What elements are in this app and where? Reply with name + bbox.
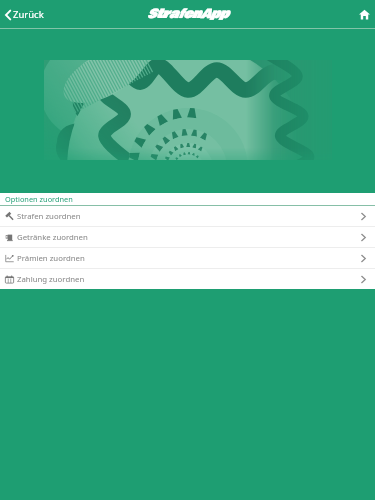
staticText: StrafenApp [147,5,229,24]
staticText: Prämien zuordnen [17,253,85,264]
staticText: Zahlung zuordnen [17,274,85,285]
button[interactable]: Zahlung zuordnen [0,269,375,289]
staticText: Optionen zuordnen [5,194,73,204]
staticText: Zurück [13,8,44,21]
button[interactable]: Getränke zuordnen [0,227,375,247]
button[interactable]: Zurück [0,4,52,25]
button[interactable]: Prämien zuordnen [0,248,375,268]
button[interactable]: Strafen zuordnen [0,206,375,226]
staticText: Getränke zuordnen [17,232,88,243]
button[interactable]: Home [350,4,375,25]
staticText: Strafen zuordnen [17,211,81,222]
